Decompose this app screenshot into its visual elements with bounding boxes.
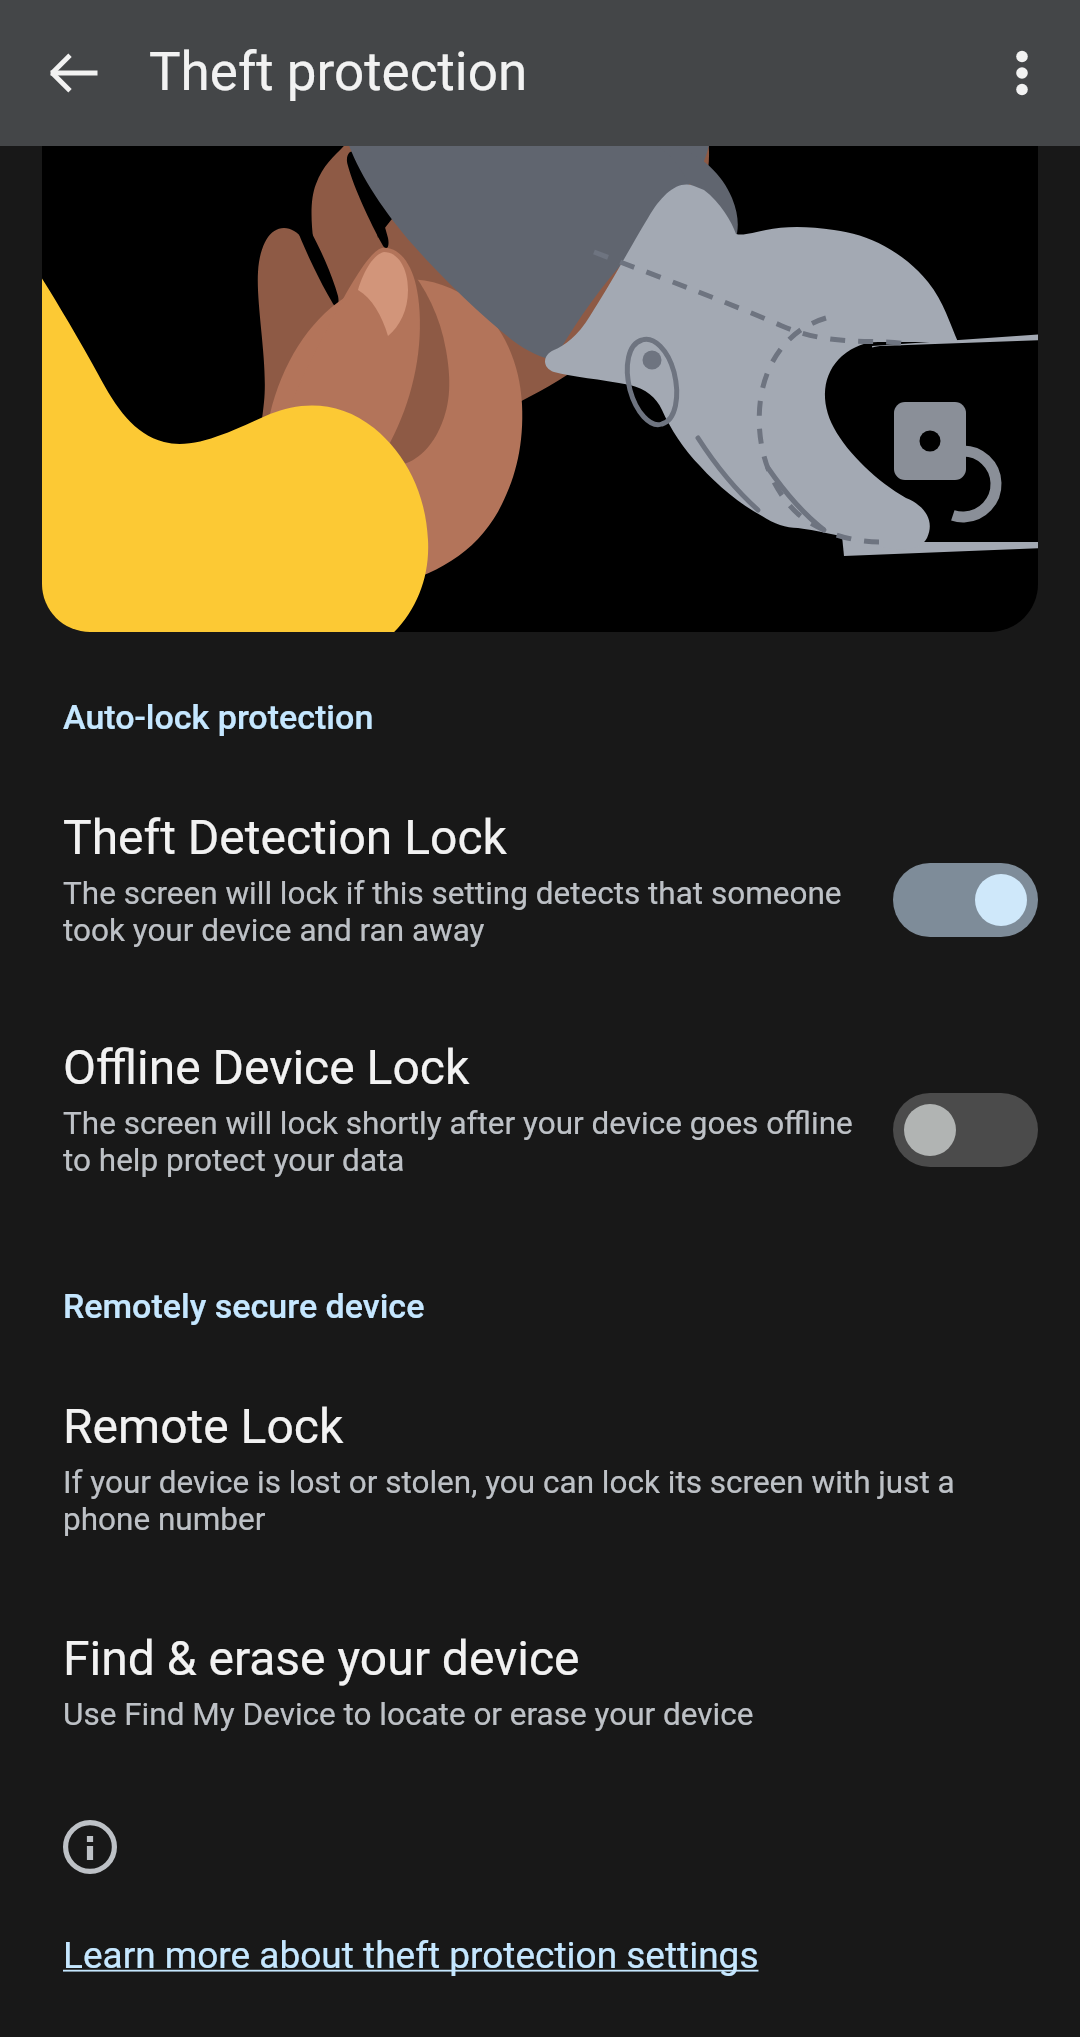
staticText: Remotely secure device	[63, 1286, 425, 1326]
button[interactable]: On	[893, 863, 1038, 937]
button[interactable]: More options	[974, 25, 1070, 121]
button[interactable]: Navigate up	[26, 25, 122, 121]
staticText: The screen will lock if this setting det…	[63, 875, 863, 948]
button[interactable]: Off	[893, 1093, 1038, 1167]
button[interactable]: Remote Lock	[0, 1398, 1080, 1537]
button[interactable]: Learn more about theft protection settin…	[63, 1934, 759, 1977]
staticText: Use Find My Device to locate or erase yo…	[63, 1696, 754, 1733]
staticText: Auto-lock protection	[63, 697, 374, 737]
staticText: Offline Device Lock	[63, 1039, 470, 1095]
staticText: Find & erase your device	[63, 1630, 580, 1686]
button[interactable]: Find & erase your device	[0, 1630, 1080, 1733]
staticText: The screen will lock shortly after your …	[63, 1105, 863, 1178]
staticText: Theft Detection Lock	[63, 809, 507, 865]
staticText: If your device is lost or stolen, you ca…	[63, 1464, 1016, 1537]
staticText: Theft protection	[149, 41, 528, 103]
button[interactable]: Information	[63, 1820, 117, 1874]
button[interactable]: Offline Device Lock	[0, 1039, 1080, 1178]
staticText: Remote Lock	[63, 1398, 344, 1454]
button[interactable]: Theft Detection Lock	[0, 809, 1080, 948]
